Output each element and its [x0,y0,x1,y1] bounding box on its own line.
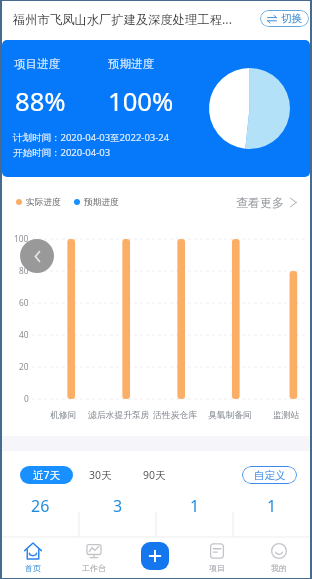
button[interactable]: 30天 [84,466,117,484]
staticText: 活性炭仓库 [153,410,197,421]
staticText: 项目 [209,563,225,573]
button[interactable]: 福州市飞凤山水厂扩建及深度处理工程... [13,11,251,28]
staticText: 0 [24,393,29,404]
staticText: 查看更多 [236,195,284,210]
button[interactable]: 我的 [248,537,310,578]
staticText: 1 [190,495,200,517]
staticText: 首页 [25,563,41,573]
staticText: 计划时间：2020-04-03至2022-03-24 [13,131,170,144]
staticText: 100 [14,233,29,244]
staticText: 监测站 [273,410,300,421]
staticText: 60 [19,297,29,308]
staticText: 机修间 [50,410,77,421]
staticText: 88% [15,84,66,119]
button[interactable]: Add [141,542,169,570]
button[interactable]: 切换 [260,10,309,27]
button[interactable]: 项目 [186,537,248,578]
button[interactable]: 查看更多 [236,192,304,212]
staticText: 福州市飞凤山水厂扩建及深度处理工程... [13,11,232,28]
staticText: 90天 [143,468,166,482]
staticText: 80 [19,265,29,276]
staticText: 3 [113,495,123,517]
staticText: 开始时间：2020-04-03 [13,146,111,159]
staticText: 工作台 [82,563,106,573]
button[interactable]: 近7天 [20,466,73,484]
button[interactable]: 90天 [138,466,171,484]
button[interactable]: 首页 [2,537,63,578]
staticText: 100% [108,84,174,119]
staticText: 预期进度 [84,197,119,208]
staticText: 项目进度 [14,57,60,71]
button[interactable]: 1 [156,495,233,533]
staticText: 40 [19,329,29,340]
staticText: 滤后水提升泵房 [88,410,150,421]
staticText: 预期进度 [108,57,154,71]
staticText: 近7天 [33,468,61,482]
staticText: 我的 [271,563,287,573]
staticText: 20 [19,361,29,372]
staticText: 自定义 [254,469,286,482]
staticText: 30天 [89,468,112,482]
button[interactable]: 自定义 [242,466,297,484]
button[interactable]: 工作台 [63,537,124,578]
button[interactable]: 1 [233,495,310,533]
staticText: 切换 [281,12,302,25]
staticText: 26 [31,495,50,517]
staticText: 1 [267,495,277,517]
staticText: 臭氧制备间 [208,410,252,421]
button[interactable]: Scroll left [20,239,54,273]
button[interactable]: 3 [79,495,156,533]
button[interactable]: 26 [2,495,79,533]
staticText: 实际进度 [26,197,61,208]
